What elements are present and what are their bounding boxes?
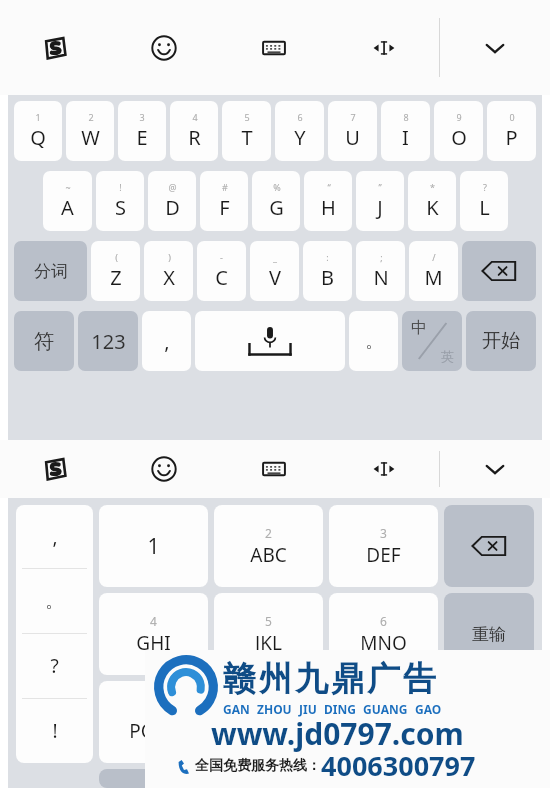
button[interactable]: ! (16, 699, 93, 763)
staticText: 8 (403, 111, 409, 123)
button[interactable]: 6 (275, 101, 324, 161)
staticText: @ (168, 181, 177, 193)
button[interactable]: Emoji (109, 0, 219, 95)
button[interactable]: Sogou input method (0, 440, 109, 498)
button[interactable]: 3 (329, 505, 438, 587)
staticText: K (426, 194, 439, 221)
staticText: 2 (88, 111, 94, 123)
button[interactable]: ? (460, 171, 508, 231)
button[interactable]: 1 (99, 505, 208, 587)
button[interactable]: 中 (329, 769, 438, 788)
staticText: 中 (375, 769, 393, 788)
button[interactable]: 7 (99, 681, 208, 763)
button[interactable]: ? (16, 634, 93, 698)
button[interactable]: ! (96, 171, 144, 231)
staticText: 5 (265, 613, 272, 629)
staticText: JIU (299, 701, 317, 717)
button[interactable]: 中 (402, 311, 462, 371)
staticText: 9 (380, 701, 387, 717)
button[interactable]: _ (250, 241, 299, 301)
button[interactable]: Keyboard layout (219, 440, 329, 498)
button[interactable]: 9 (434, 101, 483, 161)
button[interactable]: 符 (14, 311, 74, 371)
button[interactable]: - (197, 241, 246, 301)
staticText: GHI (136, 630, 171, 656)
staticText: : (326, 251, 329, 263)
staticText: E (136, 124, 148, 151)
button[interactable]: Sogou input method (0, 0, 109, 95)
staticText: I (402, 124, 409, 151)
button[interactable]: 5 (214, 593, 323, 675)
button[interactable]: Move cursor (329, 440, 439, 498)
button[interactable]: Space, voice input (195, 311, 345, 371)
staticText: www.jd0797.com (211, 713, 464, 754)
button[interactable]: Backspace (444, 505, 534, 587)
staticText: V (269, 264, 281, 291)
button[interactable]: ( (91, 241, 140, 301)
button[interactable]: : (303, 241, 352, 301)
button[interactable]: ) (144, 241, 193, 301)
button[interactable]: 6 (329, 593, 438, 675)
button[interactable]: 分词 (14, 241, 87, 301)
button[interactable]: # (200, 171, 248, 231)
button[interactable]: % (252, 171, 300, 231)
button[interactable]: 8 (214, 681, 323, 763)
staticText: 0 (509, 111, 515, 123)
button[interactable]: ” (356, 171, 404, 231)
button[interactable]: Hide keyboard (440, 0, 550, 95)
button[interactable]: 8 (381, 101, 430, 161)
button[interactable]: , (142, 311, 191, 371)
staticText: ) (168, 251, 171, 263)
button[interactable]: 2 (214, 505, 323, 587)
staticText: MNO (360, 630, 407, 656)
staticText: ” (378, 181, 382, 193)
button[interactable]: 0 (214, 769, 323, 788)
button[interactable]: 3 (118, 101, 166, 161)
button[interactable]: Keyboard layout (219, 0, 329, 95)
button[interactable]: 开始 (444, 769, 534, 788)
button[interactable]: 开始 (466, 311, 536, 371)
staticText: , (164, 328, 170, 355)
button[interactable]: 。 (16, 569, 93, 633)
button[interactable]: * (408, 171, 456, 231)
button[interactable]: Backspace (462, 241, 536, 301)
staticText: “ (327, 181, 331, 193)
button[interactable]: 4 (99, 593, 208, 675)
button[interactable]: 符 (444, 681, 534, 763)
staticText: 符 (34, 329, 54, 354)
button[interactable]: / (409, 241, 458, 301)
staticText: _ (273, 251, 277, 263)
staticText: 赣 (223, 658, 256, 700)
staticText: 9 (456, 111, 462, 123)
staticText: 1 (147, 532, 160, 561)
button[interactable]: 重输 (444, 593, 534, 675)
button[interactable]: 9 (329, 681, 438, 763)
staticText: GUANG (363, 701, 408, 717)
button[interactable]: 。 (349, 311, 398, 371)
staticText: 2 (265, 525, 272, 541)
staticText: 8 (266, 701, 273, 717)
button[interactable]: “ (304, 171, 352, 231)
button[interactable]: , (16, 505, 93, 568)
staticText: Y (294, 124, 306, 151)
button[interactable]: ; (356, 241, 405, 301)
button[interactable]: ~ (43, 171, 92, 231)
staticText: O (451, 124, 467, 151)
button[interactable]: · (99, 769, 208, 788)
button[interactable]: 4 (170, 101, 218, 161)
button[interactable]: 1 (14, 101, 62, 161)
button[interactable]: 7 (328, 101, 377, 161)
button[interactable]: Emoji (109, 440, 219, 498)
staticText: PQRS (129, 718, 178, 744)
button[interactable]: Hide keyboard (440, 440, 550, 498)
staticText: JKL (255, 630, 282, 656)
button[interactable]: Move cursor (329, 0, 439, 95)
staticText: WXYZ (358, 718, 409, 744)
button[interactable]: @ (148, 171, 196, 231)
button[interactable]: 0 (487, 101, 536, 161)
staticText: DEF (366, 542, 401, 568)
button[interactable]: 5 (222, 101, 271, 161)
button[interactable]: 2 (66, 101, 114, 161)
button[interactable]: 123 (78, 311, 138, 371)
